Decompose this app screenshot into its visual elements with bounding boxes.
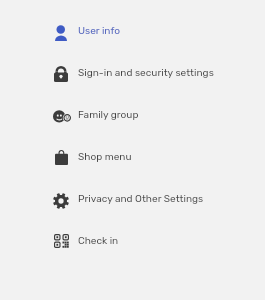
button[interactable]: Shop menu xyxy=(0,139,265,181)
staticText: Check in xyxy=(78,235,119,247)
staticText: Family group xyxy=(78,109,139,121)
button[interactable]: Sign-in and security settings xyxy=(0,55,265,97)
button[interactable]: Privacy and Other Settings xyxy=(0,181,265,223)
staticText: Privacy and Other Settings xyxy=(78,193,204,205)
staticText: User info xyxy=(78,25,120,37)
button[interactable]: Family group xyxy=(0,97,265,139)
button[interactable]: User info xyxy=(0,13,265,55)
staticText: Sign-in and security settings xyxy=(78,67,214,79)
button[interactable]: Check in xyxy=(0,223,265,265)
staticText: Shop menu xyxy=(78,151,132,163)
